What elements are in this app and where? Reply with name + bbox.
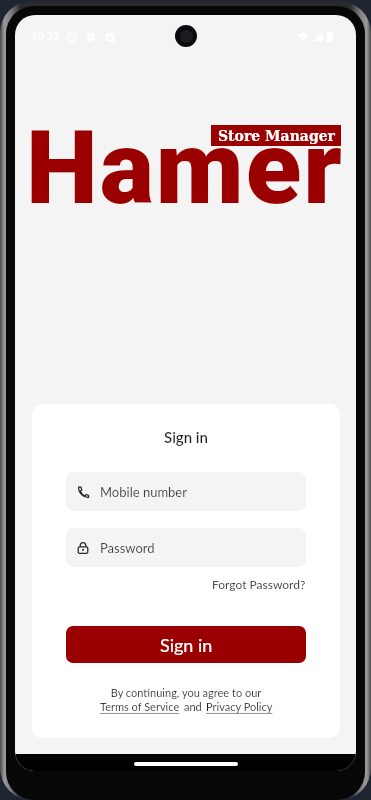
staticText: and [184, 700, 202, 713]
staticText: Sign in [32, 428, 340, 446]
staticText: Store Manager [218, 128, 335, 144]
button[interactable]: Forgot Password? [210, 575, 308, 593]
staticText: Forgot Password? [212, 577, 306, 591]
staticText: 10:33 [31, 29, 60, 42]
button[interactable]: Terms of Service [100, 700, 180, 713]
button[interactable]: Privacy Policy [206, 700, 273, 713]
staticText: Privacy Policy [206, 700, 273, 713]
staticText: Hamer [26, 108, 344, 228]
button[interactable]: Mobile number [66, 472, 306, 511]
staticText: By continuing, you agree to our [32, 686, 340, 699]
button[interactable]: Password [66, 528, 306, 567]
button[interactable]: Sign in [66, 626, 306, 663]
staticText: Sign in [160, 634, 213, 656]
staticText: Terms of Service [100, 700, 180, 713]
staticText: Mobile number [100, 484, 187, 500]
staticText: Password [100, 540, 155, 556]
